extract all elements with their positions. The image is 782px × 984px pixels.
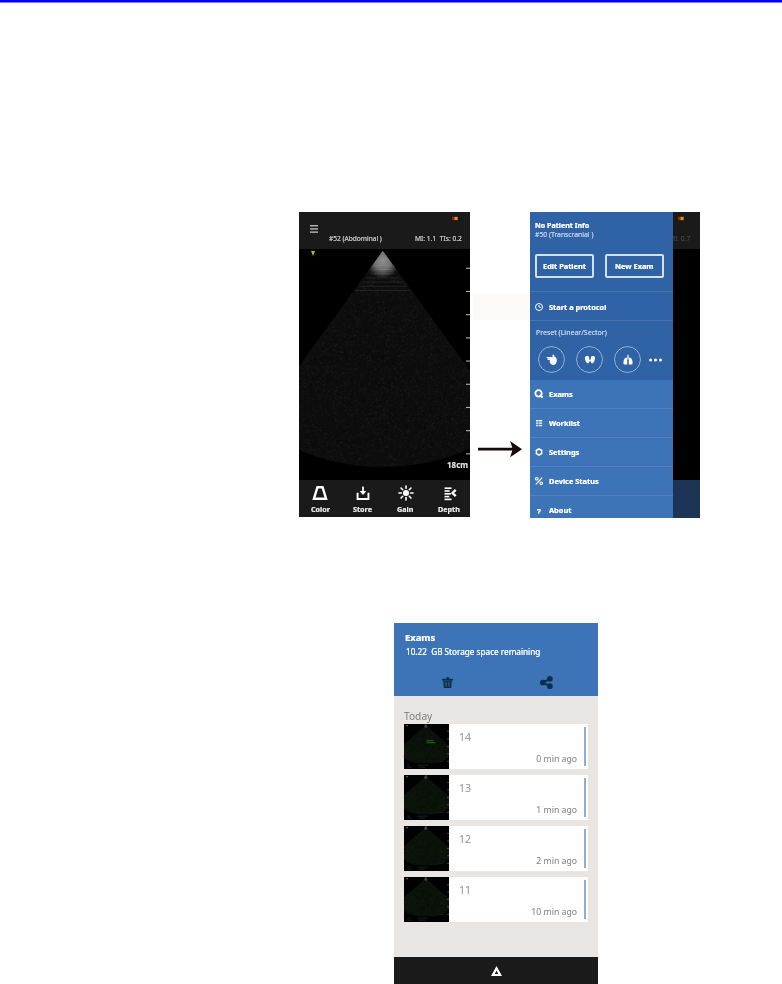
button[interactable] (538, 346, 565, 373)
button[interactable]: Share (521, 670, 571, 695)
button[interactable]: Settings (530, 438, 673, 466)
staticText: Start a protocol (549, 302, 607, 312)
staticText: New Exam (615, 261, 654, 271)
staticText: No Patient Info (535, 220, 590, 230)
button[interactable]: New Exam (605, 254, 664, 278)
staticText: 13 (459, 781, 472, 795)
button[interactable]: Menu (310, 225, 318, 233)
button[interactable]: Start a protocol (530, 293, 673, 320)
button[interactable]: Depth (427, 480, 470, 517)
button[interactable]: Store (341, 480, 384, 517)
staticText: #50 (Transcranial ) (535, 230, 594, 239)
button[interactable]: 13 (394, 775, 598, 820)
staticText: 18cm (447, 459, 469, 470)
staticText: Preset (Linear/Sector) (536, 328, 607, 338)
button[interactable]: 11 (394, 877, 598, 922)
staticText: Edit Patient (543, 261, 587, 271)
staticText: 10.22 GB Storage space remaining (406, 646, 541, 657)
button[interactable]: Worklist (530, 409, 673, 437)
staticText: 1 min ago (449, 804, 577, 816)
staticText: 12 (459, 832, 472, 846)
button[interactable] (614, 346, 641, 373)
staticText: Today (404, 709, 433, 723)
staticText: 10 min ago (449, 906, 577, 918)
staticText: 14 (459, 730, 472, 744)
staticText: #52 (Abdominal ) (329, 234, 382, 243)
button[interactable]: ? (530, 496, 673, 518)
button[interactable]: Gain (384, 480, 427, 517)
staticText: ? (537, 506, 541, 514)
staticText: Depth (438, 504, 460, 514)
button[interactable]: Delete (422, 670, 472, 695)
staticText: 0 min ago (449, 753, 577, 765)
staticText: About (549, 505, 572, 515)
staticText: 2 min ago (449, 855, 577, 867)
staticText: 11 (459, 883, 472, 897)
staticText: Worklist (549, 418, 580, 428)
staticText: Settings (549, 447, 580, 457)
staticText: Color (311, 504, 330, 514)
other: Home (491, 966, 502, 976)
staticText: Store (353, 504, 372, 514)
staticText: Device Status (549, 476, 599, 486)
button[interactable]: Color (299, 480, 341, 517)
button[interactable]: Device Status (530, 467, 673, 495)
button[interactable]: 12 (394, 826, 598, 871)
staticText: Exams (405, 631, 436, 644)
button[interactable]: 14 (394, 724, 598, 769)
staticText: Exams (549, 389, 573, 399)
button[interactable]: Exams (530, 380, 673, 408)
button[interactable]: Edit Patient (535, 254, 594, 278)
staticText: MI: 0.7 (669, 234, 691, 243)
staticText: MI: 1.1 TIs: 0.2 (415, 234, 462, 243)
button[interactable] (576, 346, 603, 373)
staticText: Gain (397, 504, 414, 514)
